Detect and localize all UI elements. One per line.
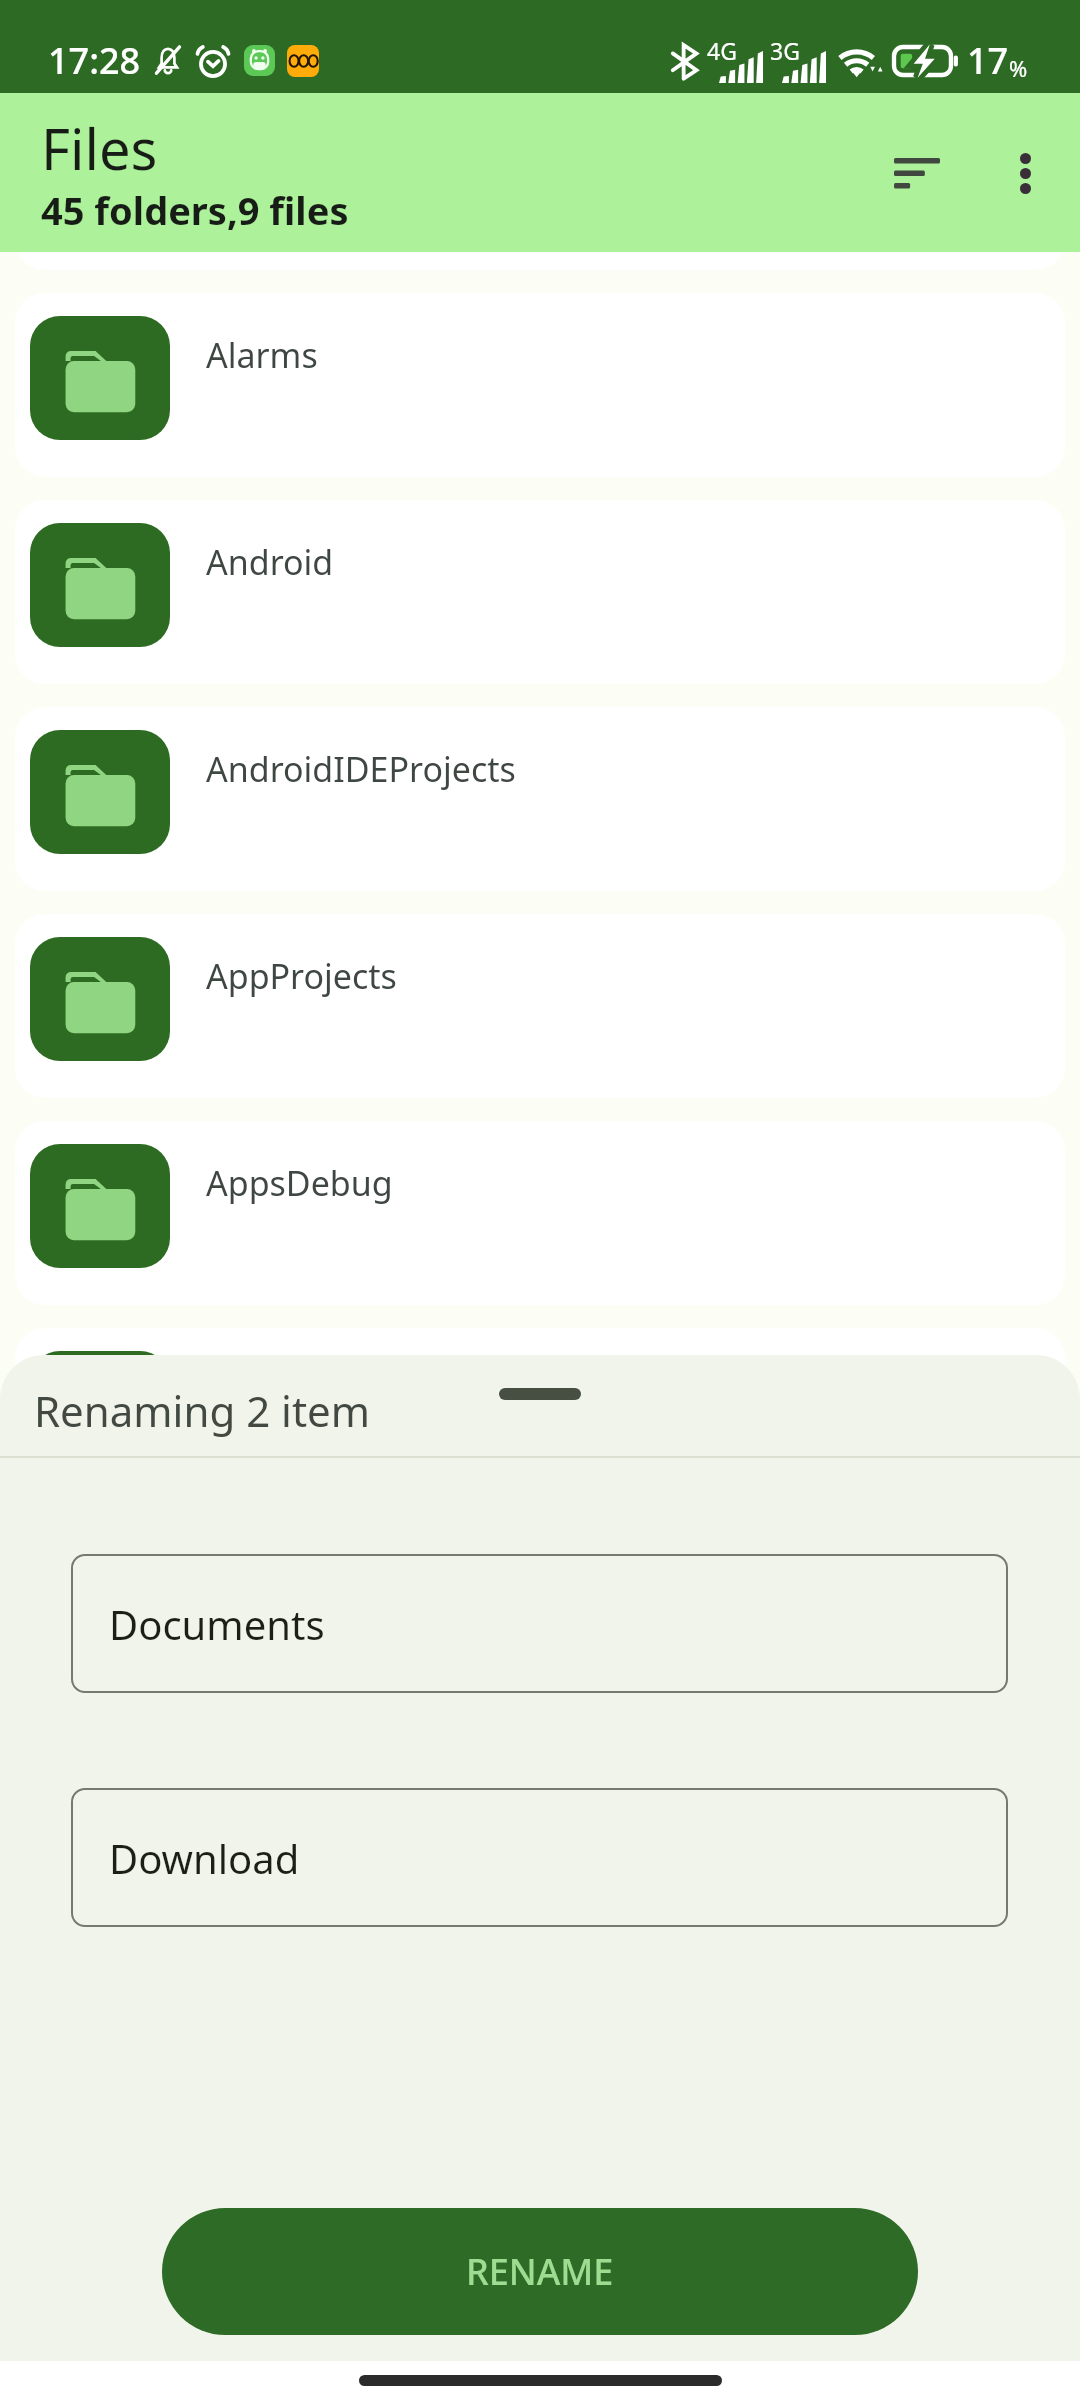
button[interactable]: Audiobooks [15, 1328, 1065, 1512]
staticText: 45 folders,9 files [41, 184, 349, 236]
button[interactable]: Download [71, 1788, 1008, 1927]
staticText: Alarms [206, 332, 318, 378]
button[interactable]: Android [15, 500, 1065, 684]
button[interactable]: AppProjects [15, 914, 1065, 1098]
staticText: 17:28 [48, 36, 141, 85]
staticText: AndroidIDEProjects [206, 746, 516, 792]
button[interactable]: AndroidIDEProjects [15, 707, 1065, 891]
button[interactable]: Adobe [15, 86, 1065, 270]
button[interactable]: More options [970, 118, 1080, 228]
button[interactable]: Alarms [15, 293, 1065, 477]
staticText: RENAME [466, 2247, 614, 2296]
staticText: Documents [109, 1597, 325, 1651]
staticText: % [1009, 53, 1028, 83]
staticText: AppProjects [206, 953, 397, 999]
staticText: Android [206, 539, 334, 585]
button[interactable]: Documents [71, 1554, 1008, 1693]
staticText: 17 [967, 36, 1009, 85]
button[interactable]: AppsDebug [15, 1121, 1065, 1305]
staticText: 3G [770, 35, 800, 66]
button[interactable]: RENAME [162, 2208, 918, 2335]
staticText: Audiobooks [206, 1367, 396, 1413]
staticText: Files [41, 110, 158, 186]
staticText: Download [109, 1831, 300, 1885]
staticText: Renaming 2 item [34, 1382, 371, 1439]
staticText: 4G [707, 35, 737, 66]
staticText: AppsDebug [206, 1160, 393, 1206]
button[interactable]: Sort [862, 118, 972, 228]
